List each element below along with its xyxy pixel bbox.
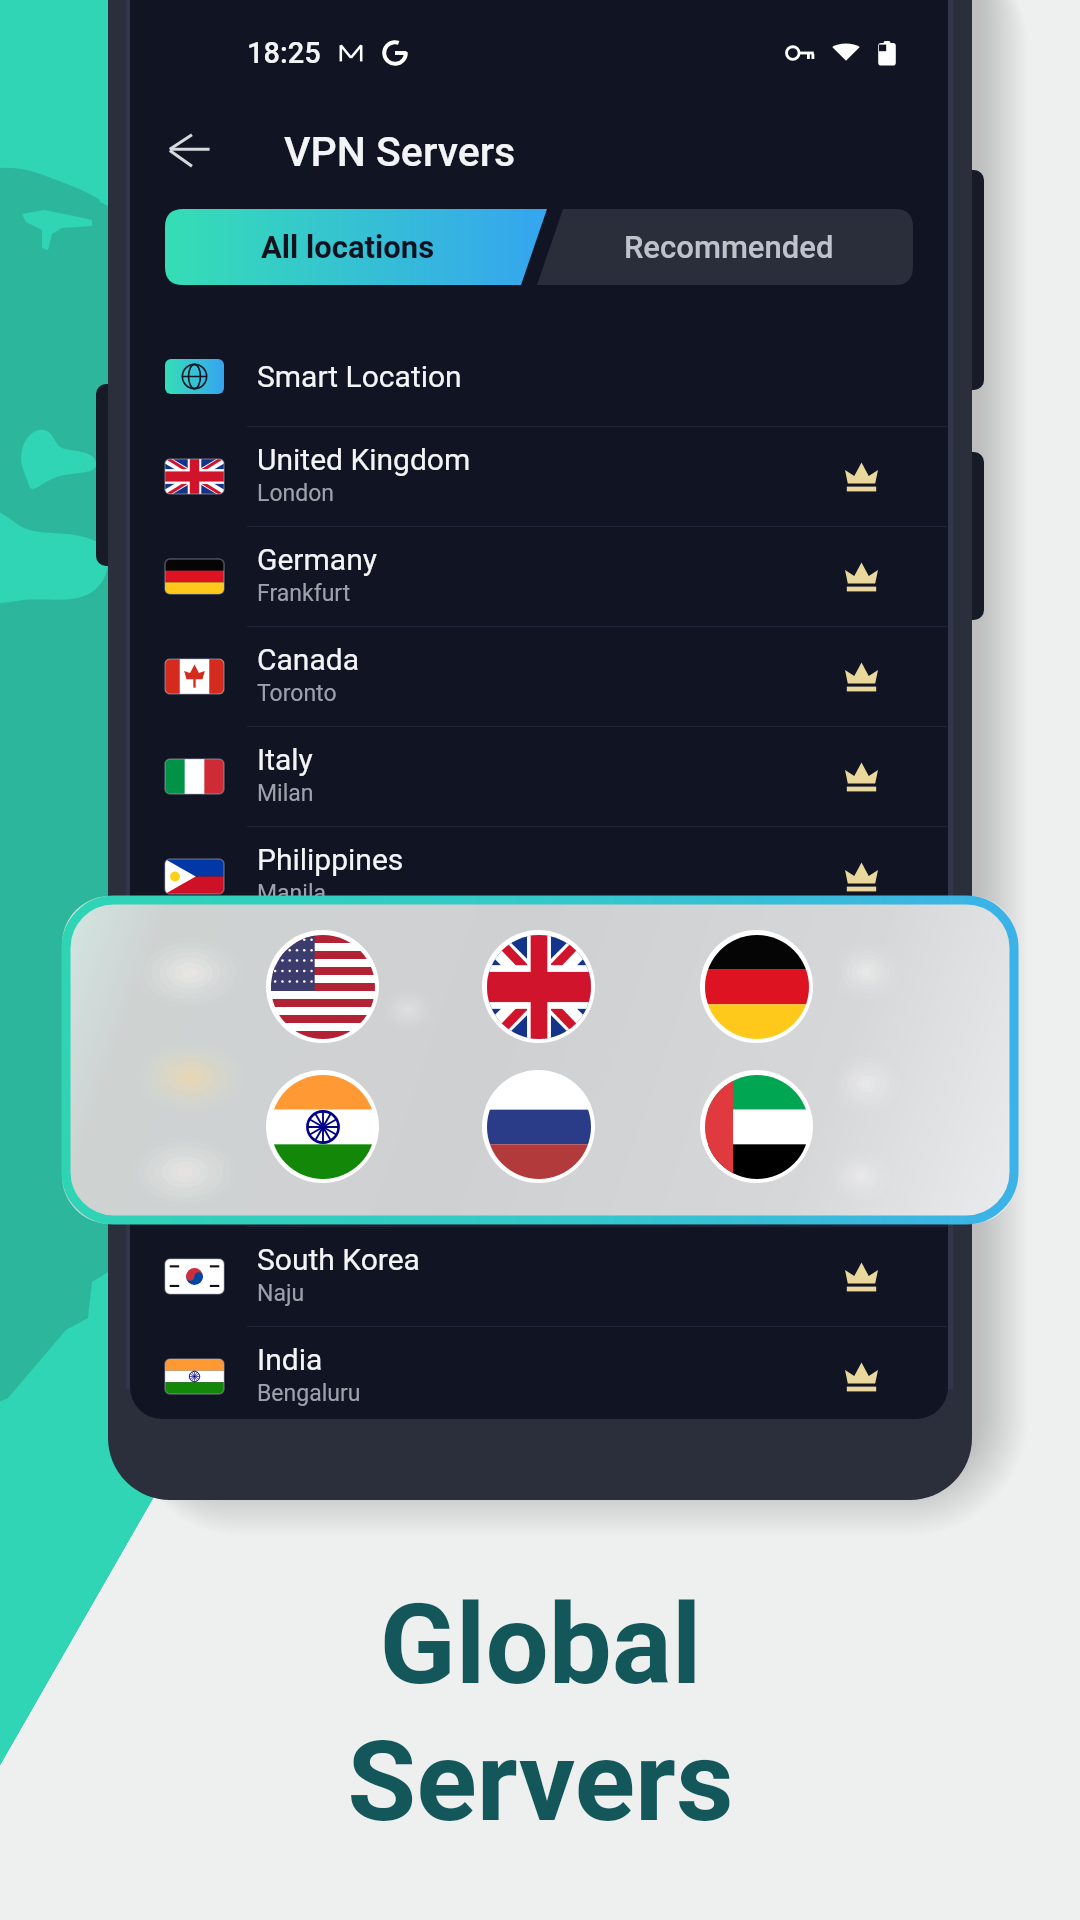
- button[interactable]: South Korea: [130, 1227, 948, 1326]
- button[interactable]: Recommended: [537, 209, 913, 285]
- staticText: Global: [379, 1579, 702, 1710]
- button[interactable]: Canada: [130, 627, 948, 726]
- button[interactable]: United Kingdom: [482, 930, 595, 1043]
- button[interactable]: Germany: [700, 930, 813, 1043]
- button[interactable]: Spain: [130, 927, 948, 1026]
- staticText: 18:25: [247, 36, 321, 70]
- button[interactable]: Italy: [130, 727, 948, 826]
- button[interactable]: All locations: [165, 209, 547, 285]
- staticText: Italy: [257, 742, 313, 777]
- staticText: Milan: [257, 780, 314, 807]
- button[interactable]: India: [266, 1070, 379, 1183]
- staticText: Germany: [257, 542, 377, 577]
- button[interactable]: Turkey: [130, 1027, 948, 1126]
- staticText: Recommended: [624, 229, 834, 265]
- staticText: Spain: [257, 942, 332, 977]
- button[interactable]: India: [130, 1327, 948, 1426]
- staticText: All locations: [261, 229, 435, 265]
- button[interactable]: United States: [266, 930, 379, 1043]
- staticText: Philippines: [257, 842, 404, 877]
- button[interactable]: United Kingdom: [130, 427, 948, 526]
- staticText: Smart Location: [257, 359, 462, 394]
- staticText: Manila: [257, 880, 326, 907]
- button[interactable]: Germany: [130, 527, 948, 626]
- staticText: VPN Servers: [284, 128, 516, 176]
- staticText: Bengaluru: [257, 1380, 361, 1407]
- staticText: Servers: [347, 1716, 734, 1847]
- staticText: Toronto: [257, 680, 337, 707]
- staticText: Naju: [257, 1280, 305, 1307]
- button[interactable]: Back: [161, 122, 218, 179]
- staticText: Madrid: [257, 980, 329, 1007]
- staticText: France: [257, 1142, 348, 1177]
- staticText: United Kingdom: [257, 442, 471, 477]
- button[interactable]: Smart Location: [130, 327, 948, 426]
- staticText: Frankfurt: [257, 580, 351, 607]
- staticText: Canada: [257, 642, 359, 677]
- staticText: Turkey: [257, 1042, 346, 1077]
- staticText: South Korea: [257, 1242, 420, 1277]
- button[interactable]: Russia: [482, 1070, 595, 1183]
- button[interactable]: France: [130, 1127, 948, 1226]
- staticText: London: [257, 480, 334, 507]
- button[interactable]: Philippines: [130, 827, 948, 926]
- button[interactable]: United Arab Emirates: [700, 1070, 813, 1183]
- staticText: Istanbul: [257, 1080, 340, 1107]
- staticText: India: [257, 1342, 323, 1377]
